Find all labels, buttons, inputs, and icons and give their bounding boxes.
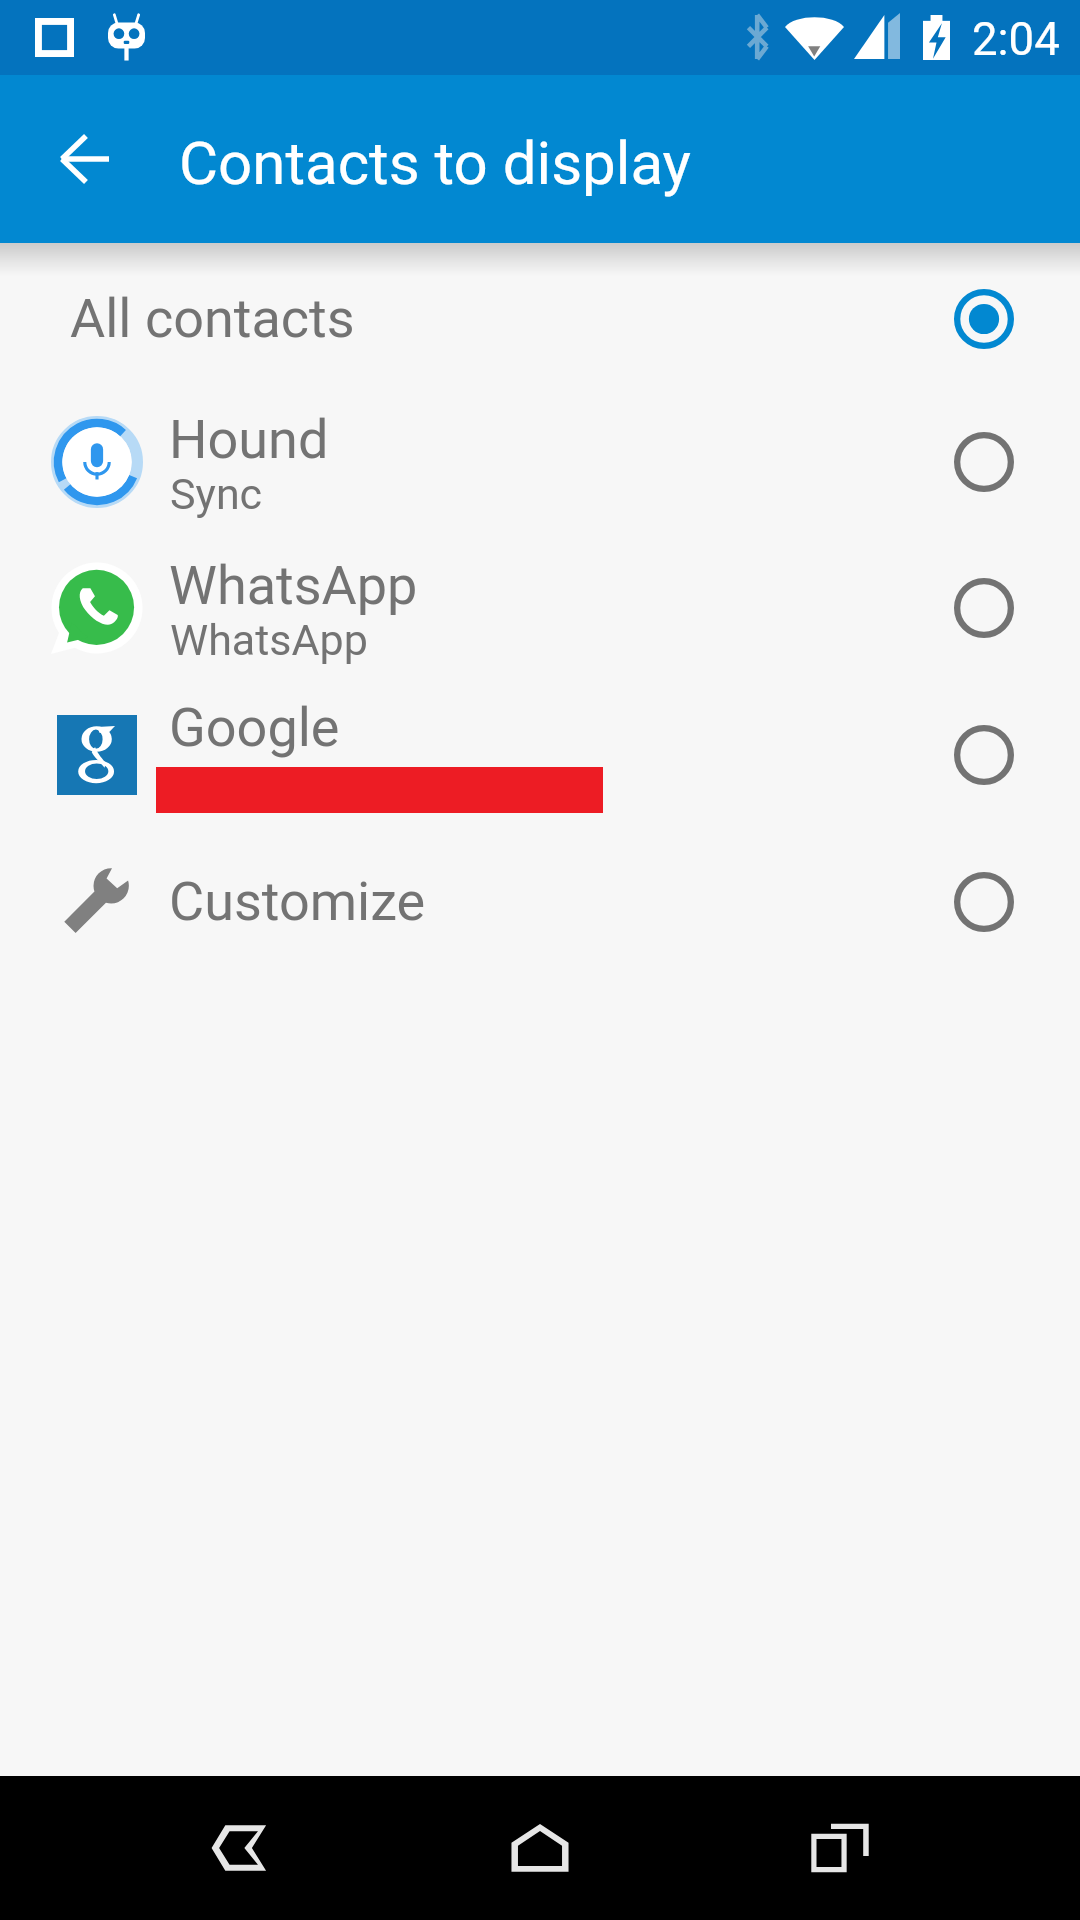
button[interactable]: Google <box>0 683 1080 826</box>
button[interactable]: Hound <box>0 390 1080 533</box>
staticText: All contacts <box>70 287 355 350</box>
staticText: WhatsApp <box>169 554 418 617</box>
staticText: Contacts to display <box>179 128 691 198</box>
button[interactable]: Customize <box>0 830 1080 973</box>
staticText: Google <box>169 696 340 759</box>
staticText: Sync <box>170 469 263 519</box>
staticText: Hound <box>169 408 329 471</box>
button[interactable]: All contacts <box>0 247 1080 390</box>
button[interactable]: Navigate up <box>36 111 132 207</box>
staticText: WhatsApp <box>170 615 368 665</box>
button[interactable]: Home <box>468 1776 612 1920</box>
button[interactable]: WhatsApp <box>0 536 1080 679</box>
button[interactable]: Recent apps <box>768 1776 912 1920</box>
staticText: Customize <box>169 870 426 933</box>
staticText: 2:04 <box>972 13 1060 66</box>
button[interactable]: Back <box>168 1776 312 1920</box>
